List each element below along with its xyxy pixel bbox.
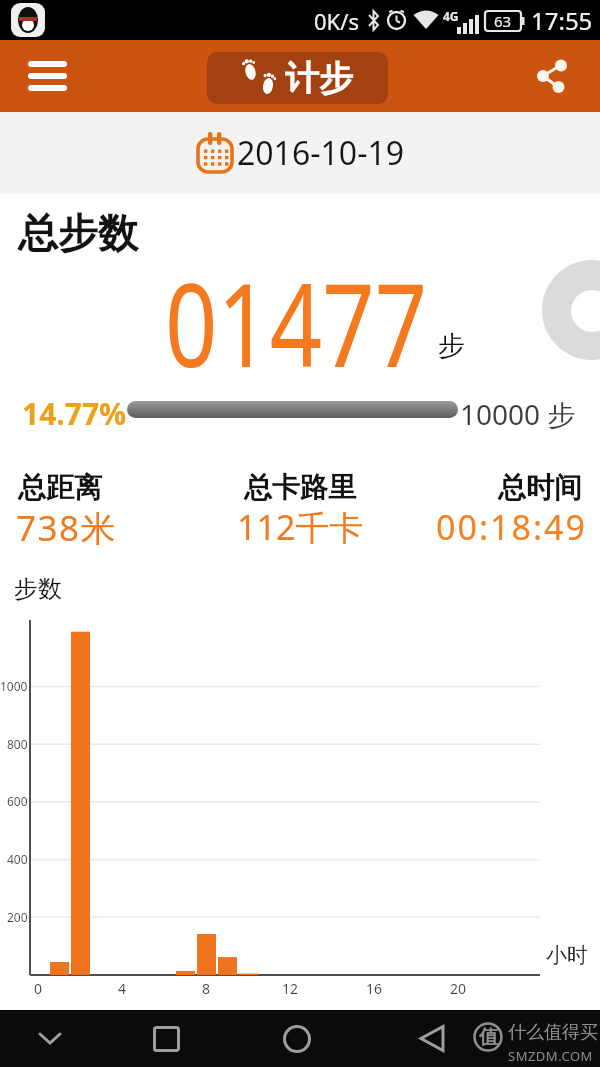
staticText: 12 — [282, 979, 299, 998]
button[interactable] — [542, 260, 600, 360]
staticText: 200 — [7, 909, 28, 925]
staticText: 14.77% — [22, 393, 127, 434]
staticText: 步 — [438, 329, 465, 363]
staticText: 总距离 — [18, 470, 102, 505]
staticText: 20 — [450, 979, 467, 998]
staticText: 0K/s — [314, 6, 359, 36]
staticText: 738米 — [16, 504, 118, 552]
staticText: SMZDM.COM — [508, 1047, 593, 1065]
staticText: 00:18:49 — [436, 504, 587, 550]
button[interactable] — [14, 46, 80, 106]
staticText: 值 — [479, 1025, 498, 1049]
staticText: 800 — [7, 736, 28, 752]
staticText: 小时 — [546, 942, 588, 968]
button[interactable] — [402, 1015, 462, 1062]
staticText: 16 — [366, 979, 383, 998]
staticText: 63 — [494, 11, 512, 31]
staticText: 0 — [34, 979, 43, 998]
staticText: 计步 — [285, 57, 353, 100]
staticText: 600 — [7, 793, 28, 809]
staticText: 8 — [202, 979, 211, 998]
button[interactable] — [524, 50, 580, 102]
staticText: 10000 步 — [460, 395, 576, 433]
staticText: 4G — [443, 8, 459, 24]
staticText: 17:55 — [531, 4, 593, 37]
staticText: 总时间 — [498, 470, 582, 505]
staticText: 总卡路里 — [244, 470, 356, 505]
button[interactable] — [20, 1015, 80, 1062]
staticText: 2016-10-19 — [237, 131, 405, 175]
staticText: 什么值得买 — [508, 1021, 598, 1044]
button[interactable] — [267, 1015, 327, 1062]
button[interactable]: 2016-10-19 — [196, 131, 405, 175]
staticText: 总步数 — [18, 208, 138, 258]
staticText: 01477 — [165, 243, 427, 401]
button[interactable] — [136, 1015, 196, 1062]
button[interactable]: 计步 — [207, 52, 388, 104]
staticText: 4 — [118, 979, 127, 998]
staticText: 400 — [7, 851, 28, 867]
staticText: 步数 — [14, 574, 62, 604]
staticText: 112千卡 — [237, 504, 364, 550]
staticText: 1000 — [0, 678, 28, 694]
